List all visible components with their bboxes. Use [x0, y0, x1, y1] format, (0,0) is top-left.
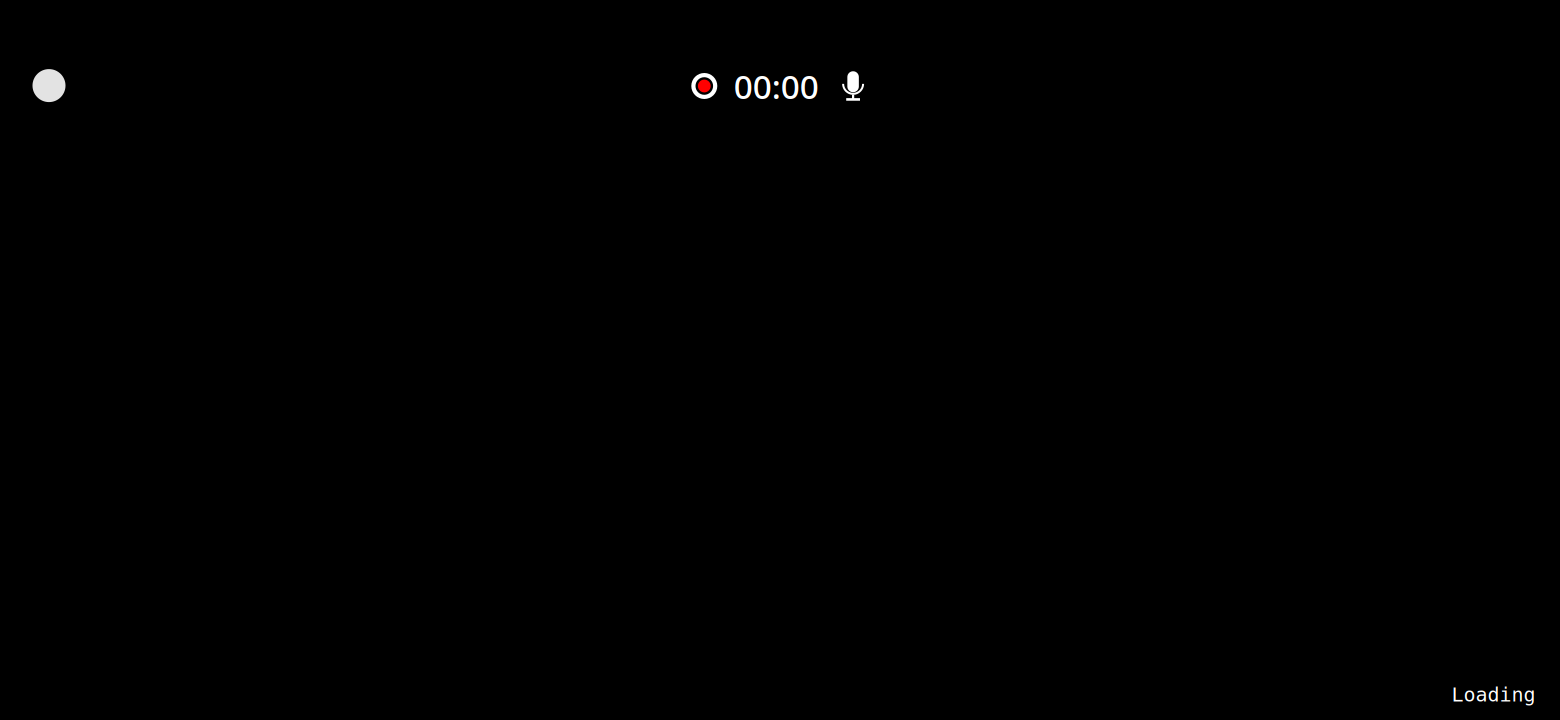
button[interactable]: Capture [32, 69, 65, 102]
button[interactable]: Microphone [842, 71, 864, 101]
staticText: Loading [1452, 683, 1536, 706]
staticText: 00:00 [734, 64, 819, 108]
button[interactable]: Stop recording [691, 73, 717, 99]
